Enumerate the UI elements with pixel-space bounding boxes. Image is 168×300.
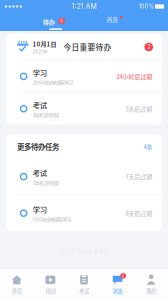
button[interactable]: 首页 [0,271,34,298]
staticText: 待办 [43,17,55,26]
button[interactable]: 学习 [6,195,162,231]
button[interactable]: 考试 [6,159,162,195]
button[interactable]: 2 [101,271,134,298]
staticText: 消息 [113,287,123,295]
staticText: 更多待办任务 [17,141,59,152]
button[interactable]: 学习 [6,61,162,92]
staticText: 4条 [143,142,152,151]
button[interactable]: 消息 [100,13,132,31]
staticText: 3天后过期 [125,105,152,113]
staticText: 100% [138,3,153,10]
staticText: 7天后过期 [125,172,152,181]
staticText: 2 [122,273,125,278]
button[interactable]: 考试 [67,271,101,298]
staticText: 5节月度必修课程学习 [33,216,71,222]
staticText: 8天后过期 [125,209,152,217]
staticText: 考试 [79,287,89,295]
staticText: 首页 [12,287,22,295]
staticText: 2 [147,44,150,50]
staticText: 我的 [146,287,156,295]
button[interactable]: 考试 [6,93,162,125]
staticText: 10月1日 [32,39,56,48]
staticText: 24小时后过期 [116,72,152,81]
staticText: 培训 [45,287,55,295]
button[interactable]: 培训 [34,271,67,298]
staticText: 8 [60,18,63,24]
staticText: 考试 [33,99,47,110]
staticText: 考试 [33,167,47,178]
button[interactable]: 我的 [134,271,168,298]
staticText: 消息 [106,15,118,23]
staticText: 3场考试待完成 [33,179,59,186]
staticText: 3场考试待完成 [33,112,59,118]
button[interactable]: 待办 [36,13,68,31]
staticText: 学习 [33,204,47,214]
staticText: 学习 [33,67,47,78]
staticText: 2021年 [32,49,48,54]
staticText: 10节月度必修课程学习 [33,79,73,86]
staticText: 今日重要待办 [63,41,111,53]
staticText: 1:21 AM [71,2,96,11]
